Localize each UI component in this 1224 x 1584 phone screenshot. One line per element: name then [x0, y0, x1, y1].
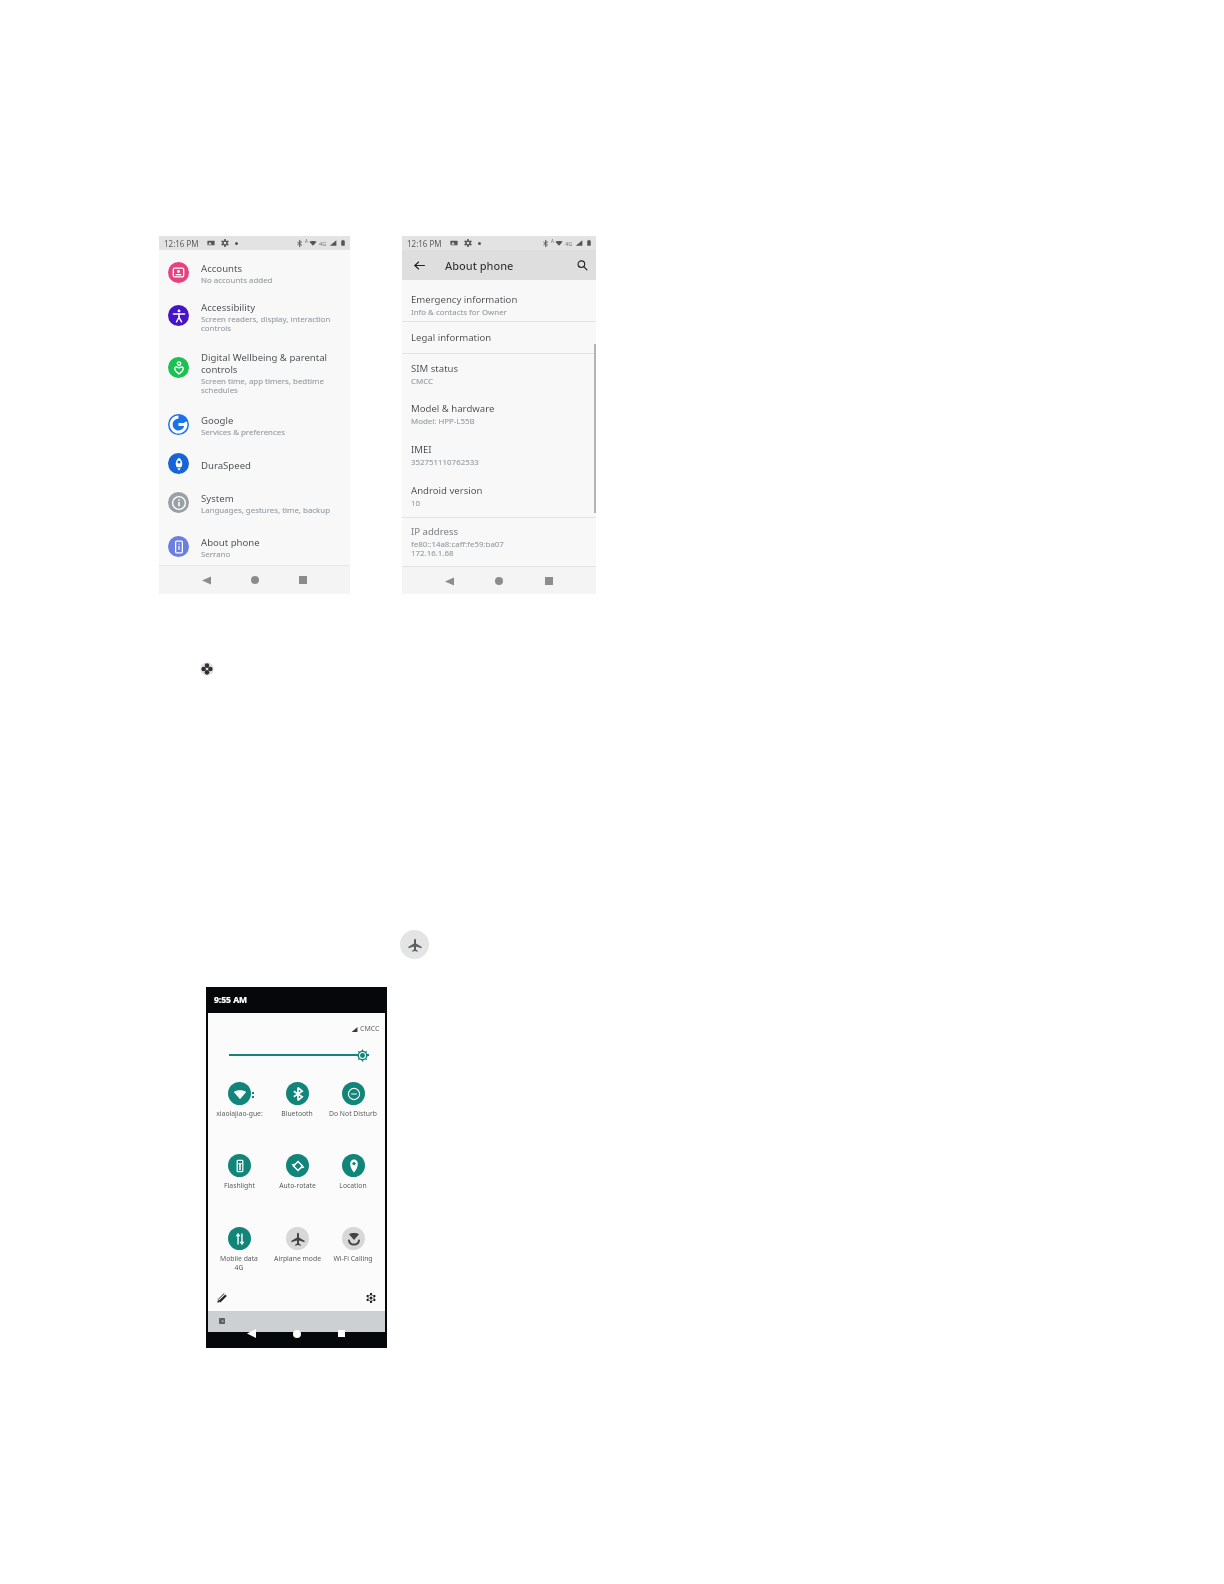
staticText: Auto-rotate [279, 1181, 316, 1190]
button[interactable]: Google [159, 405, 350, 443]
button[interactable]: Emergency information [402, 280, 596, 321]
button[interactable]: Edit [215, 1291, 229, 1305]
button[interactable]: Home [245, 570, 265, 590]
staticText: Flashlight [224, 1181, 255, 1190]
button[interactable]: About phone [159, 527, 350, 565]
staticText: Legal information [411, 331, 492, 344]
button[interactable]: xiaolajiao-gue: [211, 1082, 267, 1118]
button[interactable]: DuraSpeed [159, 444, 350, 482]
button[interactable]: Search [571, 254, 593, 276]
staticText: xiaolajiao-gue: [216, 1109, 263, 1118]
staticText: 10 [411, 498, 421, 509]
button[interactable]: Back [196, 570, 216, 590]
staticText: About phone [445, 258, 514, 273]
staticText: Do Not Disturb [329, 1109, 377, 1118]
staticText: No accounts added [201, 275, 273, 286]
staticText: Wi-Fi Calling [333, 1254, 373, 1263]
button[interactable]: Recents [293, 570, 313, 590]
staticText: Android version [411, 484, 483, 497]
button[interactable]: Home [489, 571, 509, 591]
staticText: Screen readers, display, interaction con… [201, 314, 331, 334]
staticText: A [551, 238, 554, 244]
button[interactable]: Android version [402, 476, 596, 517]
staticText: CMCC [411, 376, 433, 387]
button[interactable]: Location [325, 1154, 381, 1190]
staticText: About phone [201, 536, 260, 549]
button[interactable]: Flashlight [211, 1154, 267, 1190]
button[interactable]: Legal information [402, 322, 596, 353]
staticText: Bluetooth [281, 1109, 313, 1118]
staticText: Accessibility [201, 301, 256, 314]
button[interactable]: Home [289, 1326, 304, 1341]
staticText: Services & preferences [201, 427, 285, 438]
staticText: Google [201, 414, 234, 427]
staticText: Mobile data 4G [220, 1254, 258, 1272]
staticText: 4G [319, 240, 327, 247]
button[interactable]: Wi-Fi Calling [325, 1227, 381, 1263]
button[interactable]: Airplane mode [269, 1227, 325, 1263]
staticText: Emergency information [411, 293, 518, 306]
button[interactable]: Back [408, 254, 430, 276]
button[interactable]: Auto-rotate [269, 1154, 325, 1190]
staticText: Location [339, 1181, 367, 1190]
staticText: Info & contacts for Owner [411, 307, 507, 318]
staticText: IMEI [411, 443, 432, 456]
button[interactable]: System [159, 483, 350, 521]
staticText: fe80::14a8:caff:fe59:ba07 172.16.1.68 [411, 539, 504, 559]
button[interactable]: Bluetooth [269, 1082, 325, 1118]
staticText: Model: HPP-L55B [411, 416, 475, 427]
button[interactable]: Do Not Disturb [325, 1082, 381, 1118]
button[interactable]: Accessibility [159, 296, 350, 334]
button[interactable]: SIM status [402, 354, 596, 394]
staticText: A [305, 238, 308, 244]
staticText: 12:16 PM [407, 238, 442, 249]
staticText: DuraSpeed [201, 459, 251, 472]
button[interactable]: IMEI [402, 435, 596, 476]
button[interactable]: Accounts [159, 253, 350, 291]
staticText: IP address [411, 525, 459, 538]
button[interactable]: Digital Wellbeing & parental controls [159, 341, 350, 393]
staticText: SIM status [411, 362, 459, 375]
staticText: 352751110762533 [411, 457, 479, 468]
button[interactable]: Mobile data 4G [211, 1227, 267, 1272]
staticText: 4G [565, 240, 573, 247]
staticText: Languages, gestures, time, backup [201, 505, 331, 516]
staticText: Accounts [201, 262, 243, 275]
button[interactable]: Settings [364, 1291, 378, 1305]
staticText: Airplane mode [274, 1254, 321, 1263]
button[interactable]: Airplane mode [400, 930, 429, 959]
staticText: Model & hardware [411, 402, 495, 415]
button[interactable]: IP address [402, 518, 596, 566]
staticText: 12:16 PM [164, 238, 199, 249]
staticText: 9:55 AM [214, 994, 248, 1006]
button[interactable]: Recents [539, 571, 559, 591]
button[interactable]: Recents [334, 1326, 349, 1341]
button[interactable]: Model & hardware [402, 394, 596, 435]
button[interactable]: Back [439, 571, 459, 591]
staticText: System [201, 492, 234, 505]
staticText: Screen time, app timers, bedtime schedul… [201, 376, 324, 396]
button[interactable]: Back [244, 1326, 259, 1341]
staticText: CMCC [360, 1024, 380, 1034]
staticText: Serrano [201, 549, 231, 560]
staticText: Digital Wellbeing & parental controls [201, 351, 328, 376]
